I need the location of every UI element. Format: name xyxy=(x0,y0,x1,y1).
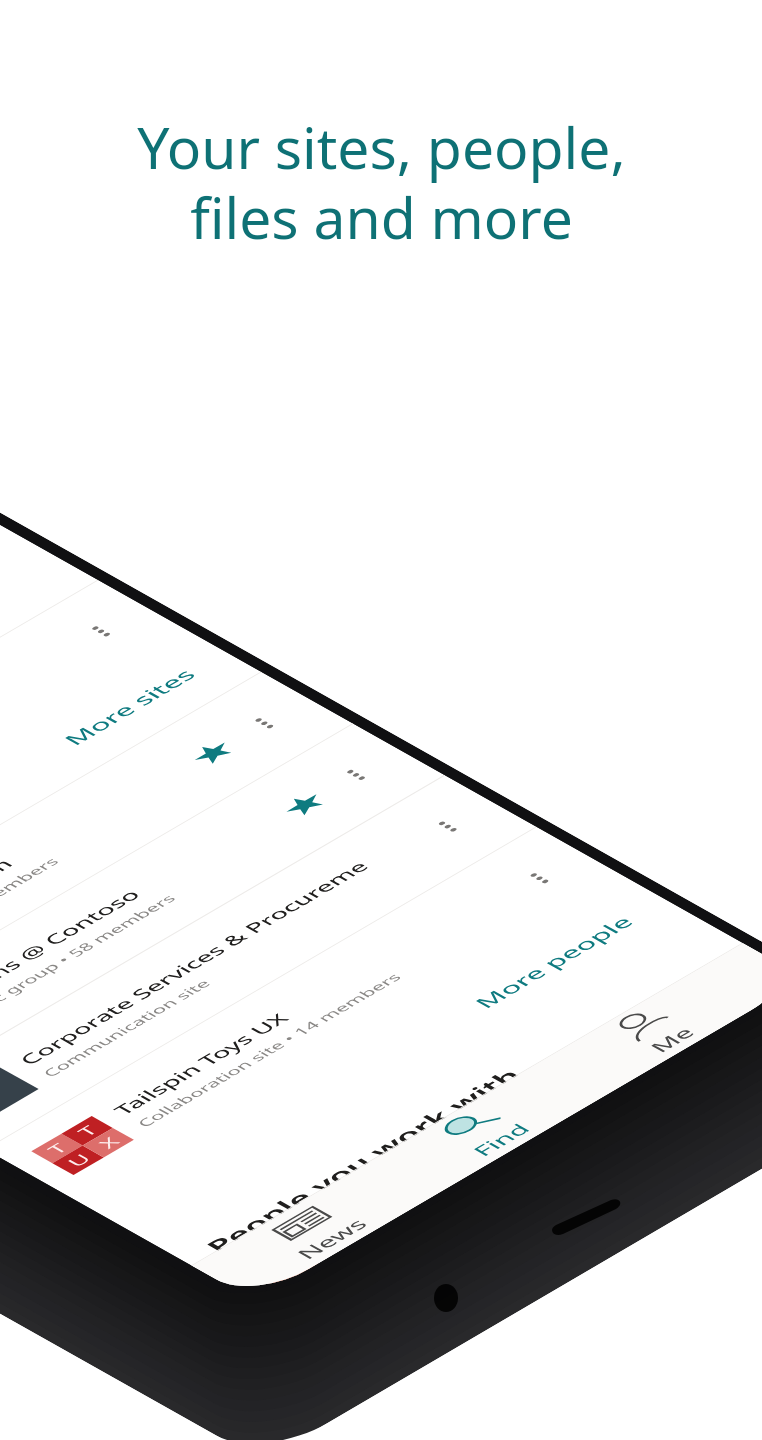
button[interactable]: Find xyxy=(374,1067,592,1193)
staticText: People you work with xyxy=(197,1063,529,1257)
staticText: Marketing team xyxy=(0,855,19,965)
staticText: X xyxy=(93,1133,126,1152)
staticText: Corporate Services & Procureme xyxy=(13,858,374,1068)
staticText: U xyxy=(61,1150,97,1170)
button[interactable]: Contoso Marketing xyxy=(0,580,189,954)
staticText: More people xyxy=(468,912,641,1013)
staticText: Your sites, people, files and more xyxy=(137,108,626,256)
button[interactable]: More options xyxy=(419,810,477,843)
button[interactable]: AV xyxy=(227,963,762,1301)
button[interactable]: More sites xyxy=(0,631,261,994)
button[interactable]: More options xyxy=(720,980,762,1013)
staticText: Communication site xyxy=(38,976,216,1080)
button[interactable]: T xyxy=(0,826,628,1201)
staticText: More sites xyxy=(57,665,203,750)
button[interactable]: More people xyxy=(76,878,699,1241)
staticText: Public group • 58 members xyxy=(0,891,181,1028)
button[interactable]: Corporate Services & Procureme xyxy=(0,775,536,1149)
button[interactable]: Big fans @ Contoso xyxy=(0,723,444,1097)
button[interactable]: More options xyxy=(327,758,385,792)
staticText: News xyxy=(290,1214,375,1263)
staticText: Big fans @ Contoso xyxy=(0,886,146,1017)
staticText: Adele Vance xyxy=(322,1156,471,1243)
button[interactable]: More options xyxy=(72,615,130,648)
button[interactable]: Me xyxy=(545,967,762,1093)
staticText: Me xyxy=(643,1023,702,1057)
button[interactable]: More options xyxy=(235,707,293,740)
staticText: Find xyxy=(466,1119,538,1160)
staticText: T xyxy=(72,1122,104,1140)
staticText: Collaboration site • 14 members xyxy=(132,970,406,1130)
button[interactable]: Marketing team xyxy=(0,672,353,1046)
button[interactable]: News xyxy=(205,1166,422,1292)
staticText: Marketing manager xyxy=(347,1151,509,1246)
staticText: T xyxy=(41,1140,73,1158)
staticText: Tailspin Toys UX xyxy=(107,1009,295,1119)
staticText: AV xyxy=(267,1250,316,1278)
button[interactable]: More options xyxy=(510,861,568,895)
staticText: Team site • 12 members xyxy=(0,854,64,977)
